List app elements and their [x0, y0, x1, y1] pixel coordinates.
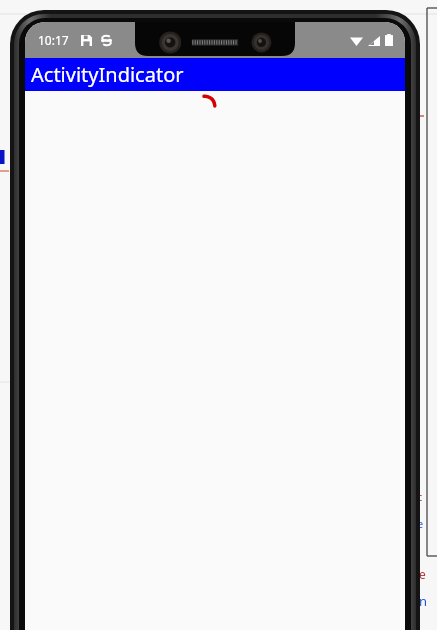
- staticText: e: [417, 516, 424, 531]
- staticText: 10:17: [38, 32, 69, 48]
- staticText: ActivityIndicator: [31, 61, 184, 88]
- staticText: e: [419, 566, 426, 582]
- staticText: n: [419, 592, 428, 610]
- button[interactable]: ActivityIndicator: [25, 58, 405, 91]
- other: Loading: [192, 93, 218, 119]
- staticText: c: [417, 489, 423, 504]
